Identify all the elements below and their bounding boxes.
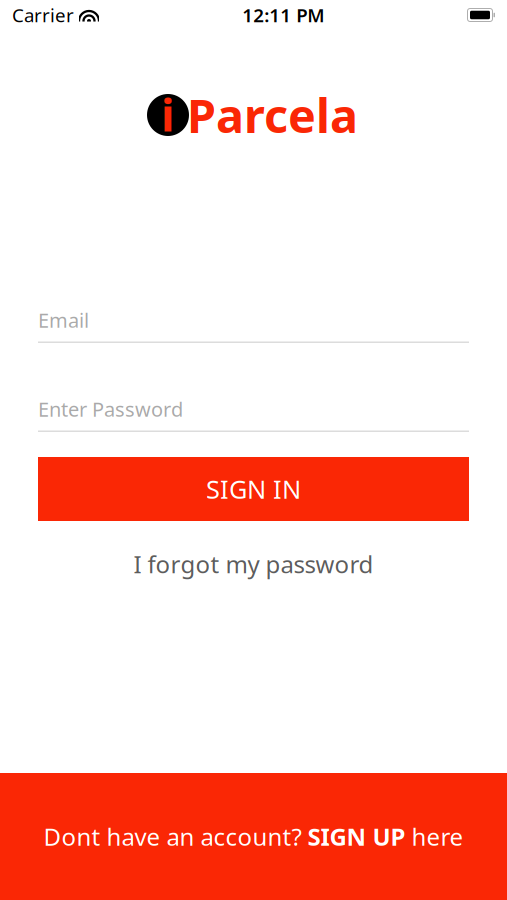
button[interactable]: Dont have an account? [0, 773, 507, 900]
staticText: Carrier [12, 3, 74, 27]
staticText: Dont have an account? [43, 821, 307, 852]
button[interactable]: SIGN IN [38, 457, 469, 521]
staticText: SIGN IN [206, 472, 301, 506]
staticText: here [405, 821, 463, 852]
staticText: i [161, 84, 175, 144]
staticText: SIGN UP [307, 821, 405, 852]
staticText: 12:11 PM [242, 3, 324, 27]
button[interactable]: I forgot my password [38, 549, 469, 579]
staticText: I forgot my password [133, 548, 373, 580]
staticText: Email [38, 307, 89, 333]
staticText: Parcela [187, 84, 358, 146]
staticText: Enter Password [38, 396, 183, 422]
